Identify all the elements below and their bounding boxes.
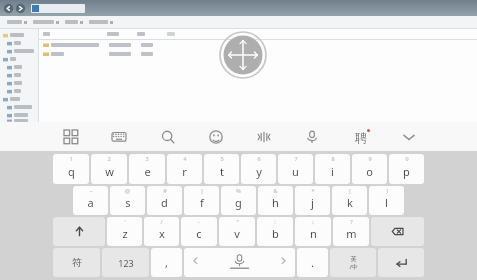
button[interactable]: 7: [278, 154, 313, 184]
staticText: 聘: [355, 130, 367, 145]
button[interactable]: [3, 95, 38, 103]
staticText: ;: [312, 218, 314, 225]
button[interactable]: [3, 71, 38, 79]
button[interactable]: Forward: [15, 3, 26, 14]
staticText: w: [105, 164, 114, 179]
button[interactable]: [3, 47, 38, 55]
button[interactable]: 1: [53, 154, 89, 184]
button[interactable]: [86, 20, 116, 24]
staticText: z: [122, 226, 128, 241]
staticText: b: [272, 226, 279, 241]
button[interactable]: 英 /中: [330, 248, 376, 277]
button[interactable]: Search: [155, 124, 181, 150]
button[interactable]: 5: [204, 154, 239, 184]
button[interactable]: [62, 20, 86, 24]
staticText: ,: [165, 255, 168, 270]
button[interactable]: 0: [389, 154, 424, 184]
button[interactable]: [3, 103, 38, 111]
staticText: h: [272, 195, 279, 210]
button[interactable]: *: [295, 186, 330, 215]
button[interactable]: 2: [91, 154, 127, 184]
staticText: ': [124, 218, 126, 225]
staticText: d: [161, 195, 168, 210]
button[interactable]: 4: [167, 154, 202, 184]
button[interactable]: Collapse keyboard: [396, 124, 422, 150]
button[interactable]: [3, 87, 38, 95]
staticText: .: [311, 255, 314, 270]
staticText: y: [256, 164, 262, 179]
button[interactable]: [31, 4, 85, 13]
button[interactable]: 3: [129, 154, 165, 184]
button[interactable]: ): [369, 186, 404, 215]
button[interactable]: @: [110, 186, 145, 215]
button[interactable]: [4, 20, 30, 24]
button[interactable]: Keyboard: [106, 124, 132, 150]
button[interactable]: [3, 119, 38, 122]
staticText: %: [236, 187, 241, 194]
button[interactable]: Shift: [53, 217, 105, 246]
button[interactable]: Enter: [378, 248, 424, 277]
button[interactable]: Voice input: [299, 124, 325, 150]
button[interactable]: Emoji: [203, 124, 229, 150]
button[interactable]: [3, 39, 38, 47]
staticText: 符: [72, 256, 82, 269]
button[interactable]: Apps: [58, 124, 84, 150]
staticText: 1: [69, 155, 73, 162]
button[interactable]: ,: [151, 248, 182, 277]
staticText: n: [310, 226, 317, 241]
button[interactable]: 9: [352, 154, 387, 184]
button[interactable]: 符: [53, 248, 100, 277]
staticText: &: [273, 187, 278, 194]
staticText: :: [274, 218, 276, 225]
staticText: 9: [368, 155, 372, 162]
button[interactable]: Recruit: [348, 124, 374, 150]
button[interactable]: [30, 20, 62, 24]
button[interactable]: &: [258, 186, 293, 215]
staticText: l: [385, 195, 388, 210]
button[interactable]: ;: [295, 217, 331, 246]
staticText: 0: [405, 155, 409, 162]
button[interactable]: -: [181, 217, 217, 246]
button[interactable]: Space: [184, 248, 295, 277]
staticText: /: [160, 218, 163, 225]
staticText: j: [311, 195, 314, 210]
button[interactable]: 6: [241, 154, 276, 184]
button[interactable]: [43, 40, 477, 49]
button[interactable]: Move: [219, 31, 267, 79]
button[interactable]: (: [332, 186, 367, 215]
button[interactable]: Clipboard: [251, 124, 277, 150]
staticText: i: [331, 164, 334, 179]
button[interactable]: /: [144, 217, 179, 246]
staticText: u: [292, 164, 299, 179]
button[interactable]: [43, 49, 477, 58]
staticText: c: [196, 226, 202, 241]
button[interactable]: .: [297, 248, 328, 277]
staticText: |: [200, 187, 204, 194]
button[interactable]: [3, 63, 38, 71]
button[interactable]: ': [107, 217, 142, 246]
button[interactable]: |: [184, 186, 219, 215]
button[interactable]: ~: [73, 186, 108, 215]
button[interactable]: Back: [3, 3, 14, 14]
button[interactable]: 123: [102, 248, 149, 277]
staticText: 8: [331, 155, 335, 162]
button[interactable]: :: [257, 217, 293, 246]
staticText: o: [366, 164, 373, 179]
button[interactable]: Backspace: [371, 217, 424, 246]
button[interactable]: %: [221, 186, 256, 215]
button[interactable]: [3, 79, 38, 87]
staticText: e: [144, 164, 151, 179]
staticText: v: [234, 226, 240, 241]
button[interactable]: [3, 55, 38, 63]
staticText: 2: [107, 155, 111, 162]
staticText: 英 /中: [349, 255, 358, 271]
staticText: 123: [118, 257, 134, 269]
button[interactable]: [3, 31, 38, 39]
button[interactable]: ": [219, 217, 255, 246]
staticText: g: [235, 195, 242, 210]
staticText: x: [159, 226, 165, 241]
button[interactable]: [3, 111, 38, 119]
button[interactable]: ?: [333, 217, 369, 246]
button[interactable]: #: [147, 186, 182, 215]
button[interactable]: 8: [315, 154, 350, 184]
